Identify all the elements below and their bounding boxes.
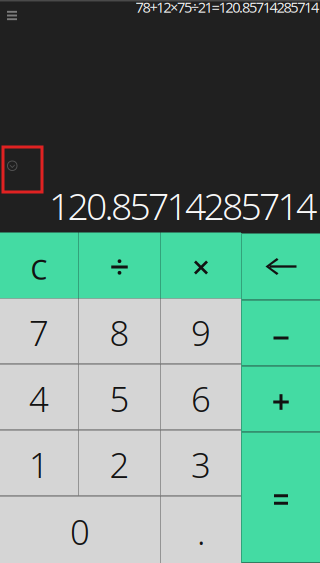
button[interactable]: Add (242, 366, 320, 431)
staticText: 9 (191, 309, 211, 355)
button[interactable]: Backspace (242, 233, 320, 299)
staticText: 1 (29, 441, 49, 487)
button[interactable]: Multiply (161, 232, 241, 298)
staticText: 2 (109, 441, 129, 487)
button[interactable]: Show history (0, 151, 30, 180)
button[interactable]: 6 (161, 364, 241, 429)
button[interactable]: . (161, 496, 241, 563)
staticText: 0 (70, 508, 90, 554)
button[interactable]: 8 (79, 298, 160, 363)
staticText: 8 (109, 309, 129, 355)
staticText: 78+12×75÷21=120.85714285714 (136, 0, 319, 17)
staticText: 3 (191, 441, 211, 487)
button[interactable]: C (0, 232, 78, 298)
staticText: 7 (29, 309, 49, 355)
button[interactable]: Subtract (242, 300, 320, 365)
button[interactable]: 7 (0, 298, 78, 363)
staticText: . (197, 508, 205, 554)
button[interactable]: 5 (79, 364, 160, 429)
staticText: C (30, 252, 47, 287)
button[interactable]: 0 (0, 496, 160, 563)
staticText: 5 (109, 375, 129, 421)
button[interactable]: 1 (0, 430, 78, 495)
button[interactable]: 2 (79, 430, 160, 495)
button[interactable]: Menu (0, 0, 29, 28)
button[interactable]: 3 (161, 430, 241, 495)
staticText: 4 (29, 375, 49, 421)
button[interactable]: 9 (161, 298, 241, 363)
button[interactable]: Divide (79, 232, 160, 298)
staticText: 120.85714285714 (49, 181, 317, 230)
button[interactable]: Equals (242, 432, 320, 562)
button[interactable]: 4 (0, 364, 78, 429)
staticText: 6 (191, 375, 211, 421)
